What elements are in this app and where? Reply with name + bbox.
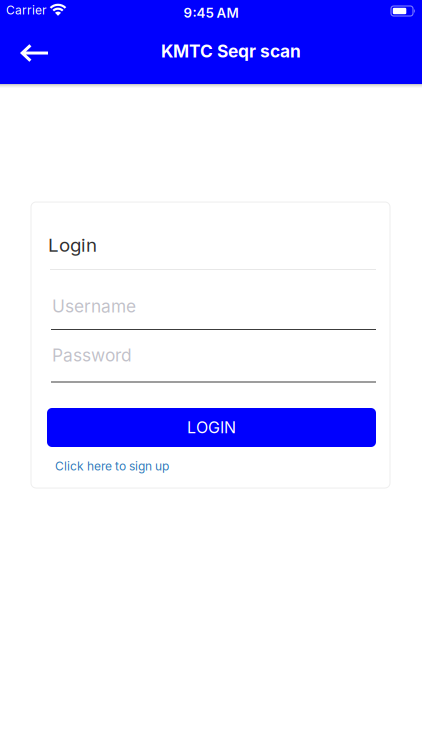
staticText: LOGIN — [187, 418, 236, 437]
staticText: KMTC Seqr scan — [161, 41, 301, 61]
staticText: 9:45 AM — [183, 5, 238, 21]
button[interactable] — [7, 33, 63, 73]
staticText: Click here to sign up — [55, 459, 169, 473]
button[interactable]: Password — [46, 340, 376, 382]
button[interactable]: Username — [46, 288, 376, 330]
staticText: Carrier — [6, 3, 47, 17]
button[interactable]: LOGIN — [47, 408, 376, 447]
button[interactable]: Click here to sign up — [55, 459, 169, 473]
staticText: Password — [52, 345, 132, 365]
staticText: Login — [48, 234, 97, 256]
staticText: Username — [52, 296, 136, 316]
